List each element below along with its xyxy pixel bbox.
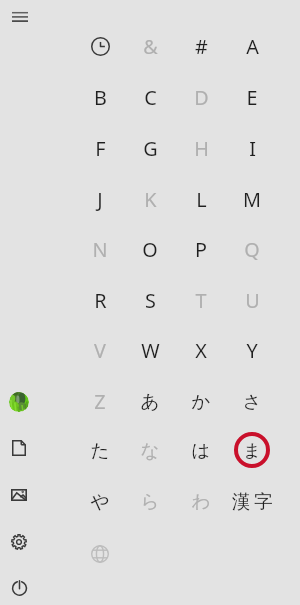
staticText: B [94, 84, 107, 111]
button[interactable]: Settings [0, 523, 38, 561]
staticText: T [195, 287, 207, 314]
staticText: V [94, 337, 106, 364]
button[interactable]: G [125, 123, 175, 173]
button[interactable]: Menu [3, 0, 37, 33]
button[interactable]: X [176, 325, 226, 375]
button[interactable]: Recent [75, 21, 125, 71]
button[interactable]: や [75, 476, 125, 526]
staticText: わ [191, 490, 211, 513]
button[interactable]: B [75, 72, 125, 122]
button[interactable]: V [75, 325, 125, 375]
button[interactable]: Q [227, 224, 277, 274]
button[interactable]: K [125, 174, 175, 224]
staticText: ら [140, 490, 160, 513]
button[interactable]: R [75, 275, 125, 325]
button[interactable]: A [227, 21, 277, 71]
staticText: な [140, 439, 160, 462]
button[interactable]: は [176, 425, 226, 475]
staticText: J [97, 186, 103, 213]
button[interactable]: # [176, 21, 226, 71]
button[interactable]: Z [75, 376, 125, 426]
button[interactable]: Documents [0, 429, 38, 467]
staticText: あ [140, 390, 160, 413]
staticText: L [196, 186, 207, 213]
button[interactable]: E [227, 72, 277, 122]
button[interactable]: J [75, 174, 125, 224]
staticText: A [246, 33, 259, 60]
staticText: Q [244, 236, 260, 263]
button[interactable]: な [125, 425, 175, 475]
staticText: U [245, 287, 260, 314]
button[interactable]: Power [0, 569, 38, 605]
staticText: Y [246, 337, 258, 364]
button[interactable]: U [227, 275, 277, 325]
button[interactable]: D [176, 72, 226, 122]
button[interactable]: M [227, 174, 277, 224]
button[interactable]: Account [0, 383, 38, 421]
staticText: G [143, 135, 158, 162]
staticText: S [145, 287, 156, 314]
staticText: # [195, 33, 208, 60]
staticText: I [249, 135, 256, 162]
staticText: や [90, 490, 110, 513]
button[interactable]: Y [227, 325, 277, 375]
staticText: K [144, 186, 157, 213]
button[interactable]: W [125, 325, 175, 375]
staticText: & [143, 33, 158, 60]
button[interactable]: & [125, 21, 175, 71]
staticText: は [191, 439, 211, 462]
button[interactable]: C [125, 72, 175, 122]
staticText: W [141, 337, 160, 364]
button[interactable]: T [176, 275, 226, 325]
staticText: た [90, 439, 110, 462]
button[interactable]: 漢字 [227, 476, 277, 526]
button[interactable]: L [176, 174, 226, 224]
button[interactable]: さ [227, 376, 277, 426]
staticText: P [195, 236, 207, 263]
button[interactable]: S [125, 275, 175, 325]
staticText: ま [242, 439, 262, 462]
button[interactable]: N [75, 224, 125, 274]
staticText: O [142, 236, 158, 263]
button[interactable]: あ [125, 376, 175, 426]
staticText: H [194, 135, 209, 162]
staticText: Z [94, 388, 106, 415]
button[interactable]: Language [75, 529, 125, 579]
button[interactable]: P [176, 224, 226, 274]
button[interactable]: た [75, 425, 125, 475]
button[interactable]: F [75, 123, 125, 173]
button[interactable]: ら [125, 476, 175, 526]
staticText: F [95, 135, 106, 162]
staticText: X [195, 337, 207, 364]
staticText: N [92, 236, 108, 263]
button[interactable]: ま [227, 425, 277, 475]
staticText: 漢字 [232, 490, 276, 513]
staticText: か [191, 390, 211, 413]
staticText: E [246, 84, 258, 111]
button[interactable]: か [176, 376, 226, 426]
staticText: M [243, 186, 261, 213]
staticText: さ [242, 390, 262, 413]
button[interactable]: I [227, 123, 277, 173]
button[interactable]: O [125, 224, 175, 274]
button[interactable]: わ [176, 476, 226, 526]
button[interactable]: H [176, 123, 226, 173]
staticText: D [194, 84, 209, 111]
button[interactable]: Pictures [0, 476, 38, 514]
staticText: C [144, 84, 157, 111]
staticText: R [94, 287, 107, 314]
